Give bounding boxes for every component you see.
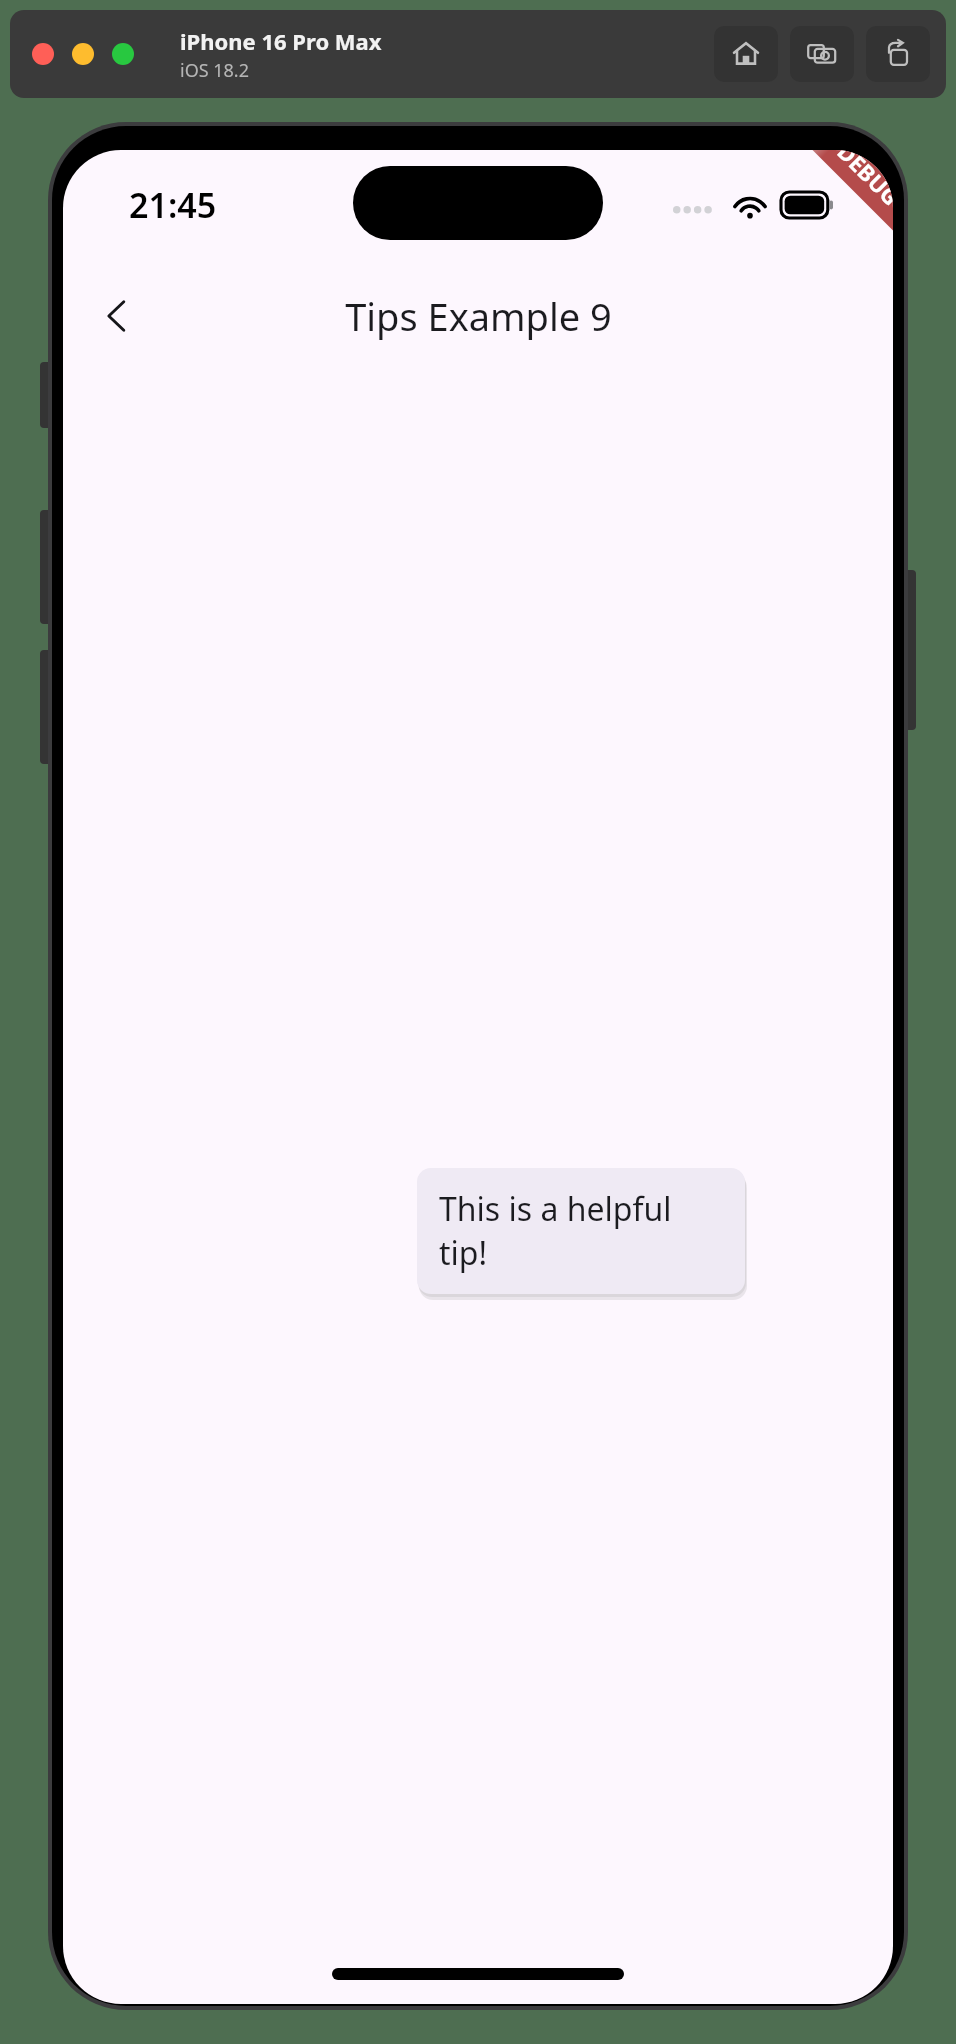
button[interactable]: Back <box>73 272 161 360</box>
staticText: iPhone 16 Pro Max <box>180 26 382 56</box>
button[interactable]: Zoom <box>112 43 134 65</box>
staticText: iOS 18.2 <box>180 58 249 83</box>
button[interactable]: Home <box>714 26 778 82</box>
button[interactable]: Close <box>32 43 54 65</box>
staticText: This is a helpful tip! <box>439 1187 723 1275</box>
staticText: 21:45 <box>129 182 217 228</box>
button[interactable]: Minimize <box>72 43 94 65</box>
staticText: Tips Example 9 <box>345 290 612 342</box>
staticText: DEBUG <box>831 150 893 211</box>
button[interactable]: Rotate <box>866 26 930 82</box>
button[interactable]: Screenshot <box>790 26 854 82</box>
button[interactable]: This is a helpful tip! <box>417 1168 745 1294</box>
